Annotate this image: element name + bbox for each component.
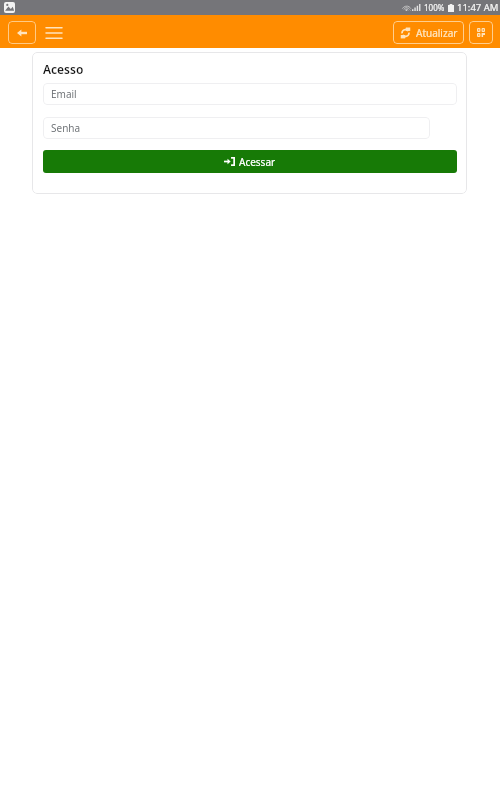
staticText: 100% xyxy=(424,2,445,13)
button[interactable]: Email xyxy=(43,83,457,105)
button[interactable]: Atualizar xyxy=(393,21,464,44)
staticText: Atualizar xyxy=(416,26,458,40)
staticText: Senha xyxy=(51,121,81,135)
button[interactable]: Acessar xyxy=(43,150,457,173)
button[interactable]: Senha xyxy=(43,117,430,139)
staticText: Acessar xyxy=(239,155,276,169)
button[interactable]: Back xyxy=(8,21,36,44)
button[interactable]: Menu xyxy=(44,21,64,44)
staticText: Email xyxy=(51,87,77,101)
staticText: 11:47 AM xyxy=(457,1,499,14)
button[interactable]: Scan QR code xyxy=(469,21,493,44)
staticText: Acesso xyxy=(43,61,84,77)
